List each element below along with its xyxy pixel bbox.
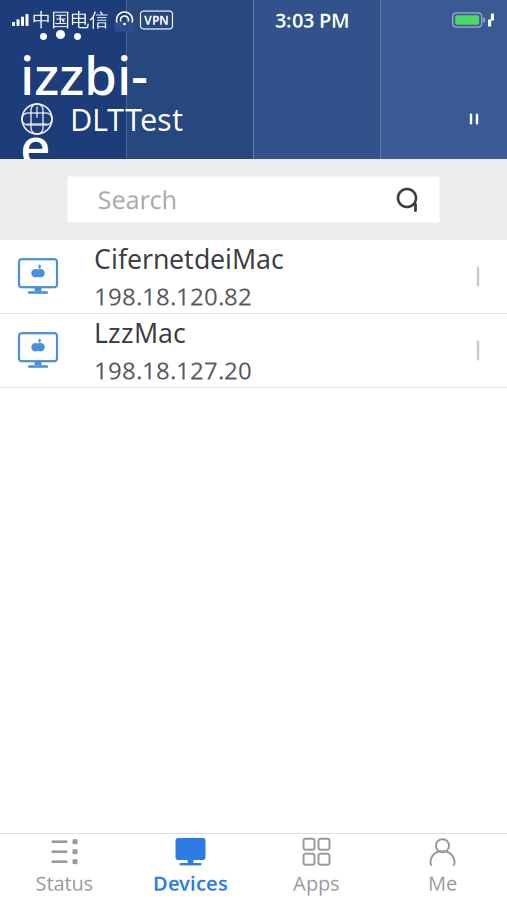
staticText: 3:03 PM <box>275 7 350 33</box>
staticText: CifernetdeiMac <box>94 241 284 276</box>
staticText: izzbie <box>20 39 148 181</box>
button[interactable]: Search <box>67 176 439 222</box>
staticText: Me <box>428 870 457 896</box>
staticText: 中国电信 <box>32 8 108 31</box>
staticText: 198.18.120.82 <box>94 280 252 312</box>
button[interactable]: Devices <box>127 834 253 900</box>
button[interactable]: LzzMac <box>0 314 507 388</box>
staticText: Apps <box>293 870 340 896</box>
button[interactable]: Apps <box>253 834 379 900</box>
staticText: DLTTest <box>70 99 183 139</box>
staticText: Status <box>35 870 93 896</box>
button[interactable]: DLTTest <box>0 89 507 149</box>
staticText: LzzMac <box>94 315 186 350</box>
staticText: VPN <box>144 12 169 28</box>
staticText: Devices <box>153 870 228 896</box>
button[interactable]: Me <box>379 834 505 900</box>
button[interactable]: CifernetdeiMac <box>0 240 507 314</box>
button[interactable]: Status <box>1 834 127 900</box>
staticText: 198.18.127.20 <box>94 354 252 386</box>
staticText: Search <box>97 183 177 216</box>
